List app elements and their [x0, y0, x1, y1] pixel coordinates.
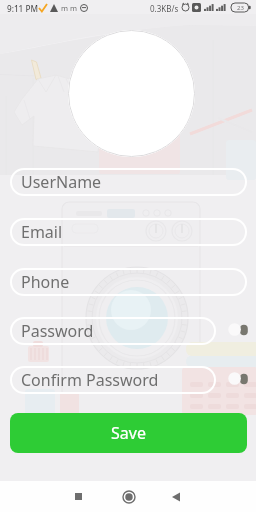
staticText: Phone	[21, 271, 70, 293]
button[interactable]: Phone	[10, 268, 247, 296]
staticText: 23	[237, 4, 244, 12]
button[interactable]: UserName	[10, 168, 247, 196]
staticText: Password	[21, 320, 94, 342]
staticText: 0.3KB/s	[150, 3, 179, 14]
button[interactable]: Home	[114, 481, 143, 512]
button[interactable]: Confirm Password	[10, 366, 216, 394]
button[interactable]: Toggle password visibility	[226, 318, 252, 342]
staticText: Email	[21, 221, 63, 243]
staticText: 9:11 PM	[7, 3, 38, 14]
button[interactable]: Email	[10, 218, 247, 246]
staticText: m m	[61, 3, 77, 13]
button[interactable]: Toggle password visibility	[226, 367, 252, 391]
button[interactable]: Back	[161, 481, 190, 512]
staticText: Confirm Password	[21, 369, 159, 391]
button[interactable]: Profile photo	[68, 30, 195, 157]
button[interactable]: Save	[10, 413, 247, 453]
staticText: Save	[111, 422, 146, 444]
button[interactable]: Recents	[64, 481, 93, 512]
staticText: UserName	[21, 171, 102, 193]
button[interactable]: Password	[10, 317, 216, 345]
